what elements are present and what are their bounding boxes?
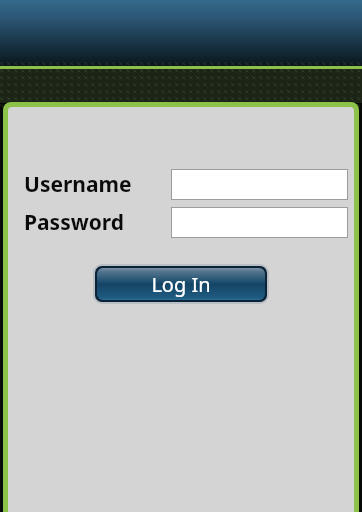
staticText: Password [24,208,125,237]
staticText: Username [24,170,132,199]
button[interactable]: Log In [97,268,265,300]
staticText: Log In [151,271,211,298]
